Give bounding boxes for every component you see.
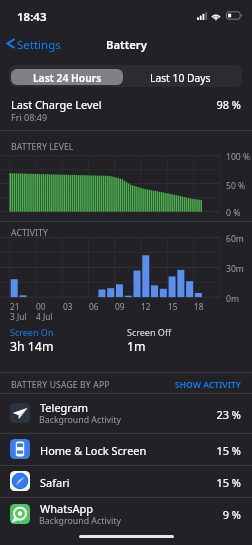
staticText: Telegram [40, 400, 89, 415]
staticText: 0m [226, 293, 239, 305]
staticText: Background Activity [39, 515, 122, 527]
staticText: 09 [115, 301, 125, 312]
button[interactable] [170, 377, 242, 391]
other: Battery [226, 11, 242, 20]
staticText: 3h 14m [10, 338, 54, 355]
staticText: BATTERY USAGE BY APP [11, 379, 110, 391]
staticText: 12 [141, 301, 151, 312]
staticText: 98 % [216, 97, 241, 112]
staticText: SHOW ACTIVITY [174, 379, 241, 391]
staticText: BATTERY LEVEL [11, 141, 74, 153]
staticText: 18 [194, 301, 204, 312]
other: Cellular signal [197, 12, 207, 20]
staticText: 15 % [216, 475, 241, 490]
button[interactable] [0, 393, 252, 433]
staticText: 23 % [216, 407, 241, 422]
staticText: 9 % [222, 507, 241, 522]
staticText: 3 Jul [10, 311, 27, 322]
staticText: Battery [106, 37, 147, 52]
button[interactable] [0, 433, 252, 465]
staticText: 15 [168, 301, 178, 312]
staticText: 100 % [226, 151, 251, 163]
staticText: 15 % [216, 443, 241, 458]
staticText: Screen On [10, 326, 54, 338]
staticText: 00 [36, 301, 46, 312]
staticText: 06 [89, 301, 99, 312]
other: Wi-Fi [211, 11, 221, 20]
staticText: ACTIVITY [11, 227, 48, 239]
staticText: 60m [226, 233, 244, 245]
staticText: Fri 08:49 [11, 111, 48, 123]
staticText: 0 % [226, 207, 241, 219]
staticText: 30m [226, 263, 244, 275]
staticText: Last Charge Level [11, 97, 102, 112]
staticText: 18:43 [17, 9, 47, 25]
button[interactable] [3, 33, 61, 53]
staticText: 03 [63, 301, 73, 312]
staticText: Settings [17, 37, 61, 53]
staticText: WhatsApp [40, 501, 93, 516]
button[interactable] [0, 465, 252, 497]
staticText: Screen Off [127, 326, 172, 338]
staticText: 4 Jul [36, 311, 53, 322]
staticText: 1m [127, 338, 146, 355]
button[interactable] [0, 497, 252, 530]
staticText: Last 24 Hours [33, 71, 102, 85]
button[interactable] [11, 69, 123, 85]
staticText: Home & Lock Screen [40, 443, 147, 458]
staticText: 50 % [226, 180, 246, 192]
staticText: Last 10 Days [150, 71, 211, 85]
button[interactable] [124, 69, 236, 85]
staticText: Safari [40, 475, 70, 490]
staticText: Background Activity [39, 414, 122, 426]
staticText: 21 [10, 301, 20, 312]
